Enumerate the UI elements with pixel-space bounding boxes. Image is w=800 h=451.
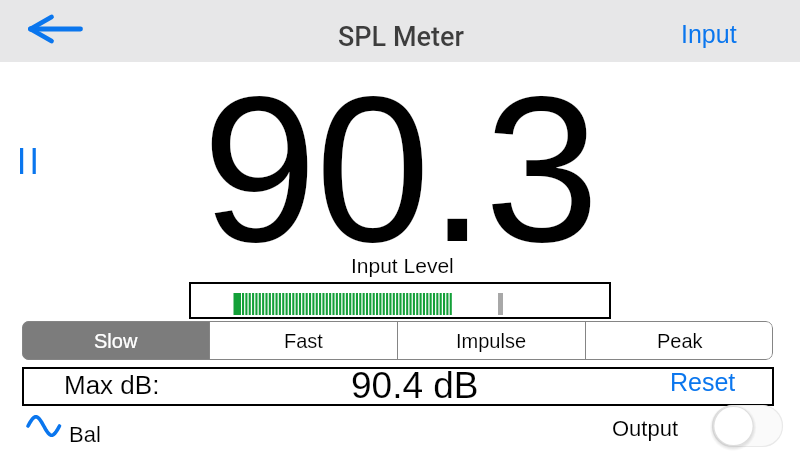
button[interactable]: Bal [20,406,98,445]
staticText: 90.3 [202,54,598,285]
button[interactable]: Max dB: [22,367,774,406]
staticText: 90.4 dB [351,365,479,404]
staticText: Output [612,416,679,441]
staticText: SPL Meter [338,21,465,53]
button[interactable]: Reset [652,363,753,400]
staticText: Impulse [456,330,527,352]
staticText: Input Level [351,254,454,277]
staticText: Peak [657,330,703,352]
button[interactable]: Input [662,12,756,56]
staticText: Input [681,20,737,48]
staticText: Max dB: [64,370,160,399]
staticText: Slow [94,330,138,352]
staticText: Bal [69,422,101,447]
staticText: Reset [670,368,736,396]
button[interactable]: Slow [22,321,209,360]
button[interactable]: Pause [2,128,60,186]
button[interactable]: Peak [586,321,773,360]
button[interactable]: Fast [210,321,397,360]
staticText: Fast [284,330,323,352]
button[interactable]: Impulse [398,321,585,360]
button[interactable]: Back [6,8,92,52]
button[interactable]: Output toggle [712,405,783,447]
